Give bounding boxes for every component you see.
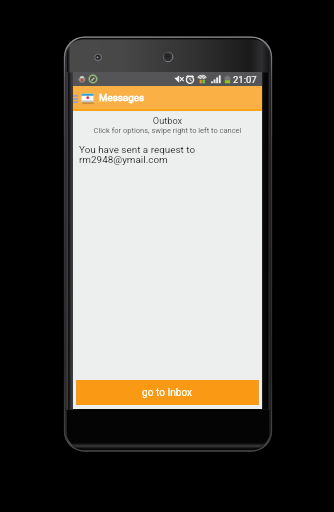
button[interactable]: go to Inbox — [76, 380, 259, 405]
staticText: Messages — [99, 92, 144, 103]
other: Menu — [73, 95, 78, 103]
staticText: Click for options, swipe right to left t… — [73, 126, 262, 135]
staticText: go to Inbox — [142, 387, 193, 399]
staticText: 21:07 — [233, 74, 257, 85]
staticText: Outbox — [73, 115, 262, 126]
staticText: You have sent a request to rm2948@ymail.… — [79, 144, 196, 166]
